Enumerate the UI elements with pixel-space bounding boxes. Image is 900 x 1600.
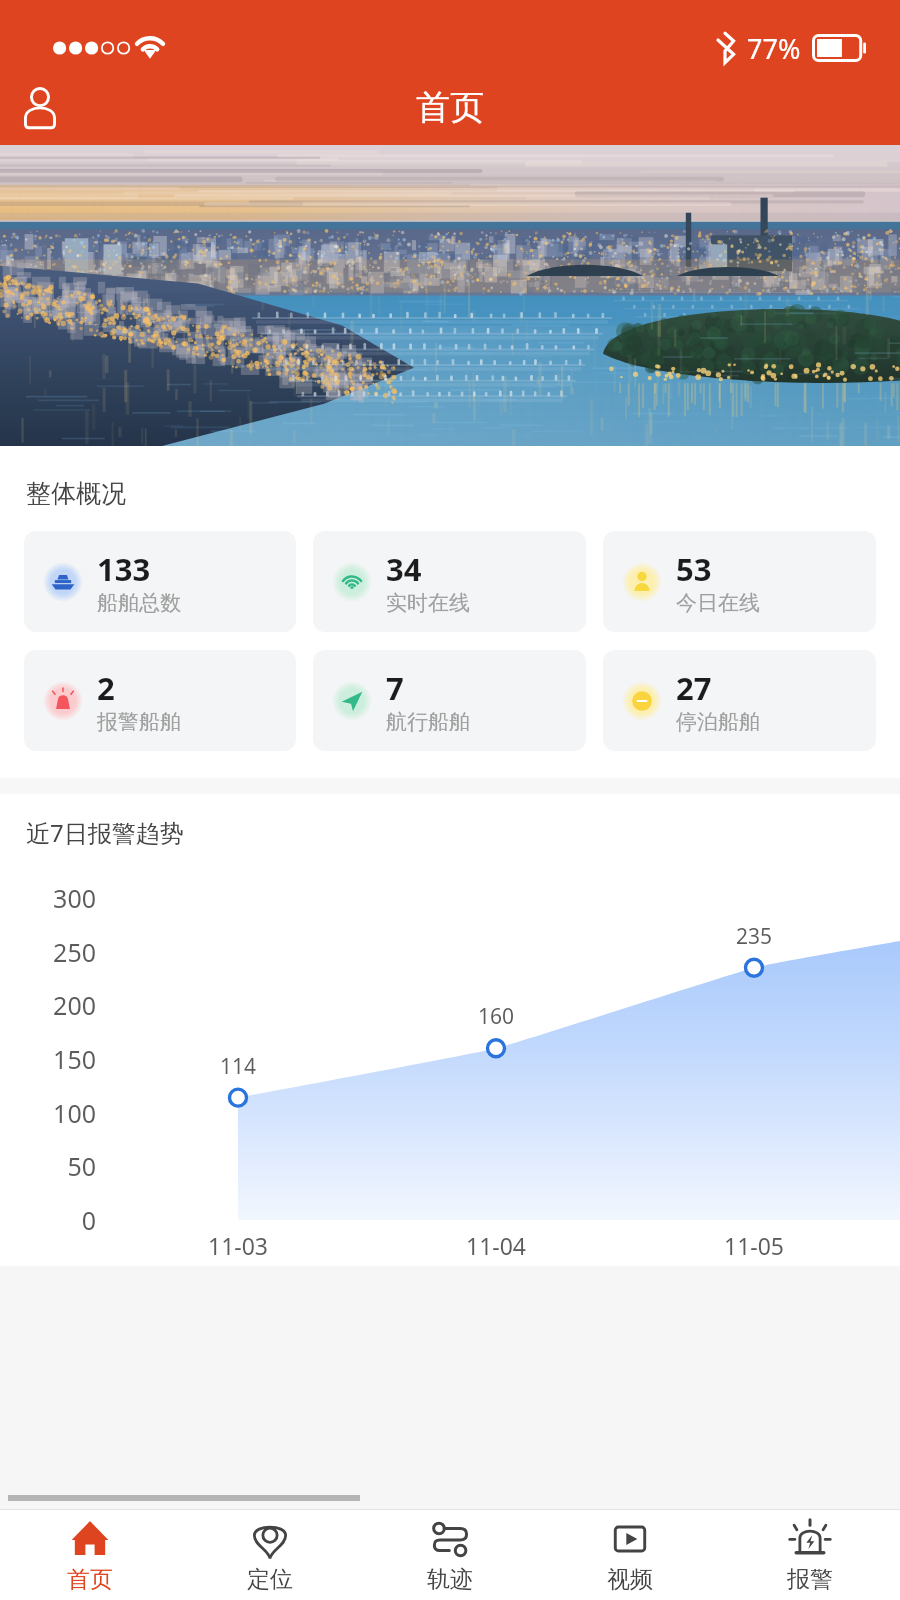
staticText: 近7日报警趋势 xyxy=(26,816,184,849)
staticText: 整体概况 xyxy=(26,478,126,509)
staticText: 160 xyxy=(478,1002,515,1031)
button[interactable]: 2 xyxy=(24,650,296,751)
staticText: 114 xyxy=(220,1052,257,1081)
button[interactable]: 报警 xyxy=(720,1510,900,1600)
staticText: 首页 xyxy=(67,1565,113,1594)
staticText: 11-03 xyxy=(208,1230,269,1261)
staticText: 航行船舶 xyxy=(386,709,470,735)
staticText: 27 xyxy=(676,667,712,709)
button[interactable]: 53 xyxy=(603,531,876,632)
staticText: 今日在线 xyxy=(676,590,760,616)
staticText: 7 xyxy=(386,667,404,709)
staticText: 首页 xyxy=(416,86,484,129)
button[interactable]: 7 xyxy=(313,650,586,751)
staticText: 34 xyxy=(386,548,422,590)
button[interactable]: 定位 xyxy=(180,1510,360,1600)
staticText: 100 xyxy=(53,1096,96,1130)
button[interactable]: 视频 xyxy=(540,1510,720,1600)
staticText: 报警 xyxy=(787,1565,833,1594)
staticText: 53 xyxy=(676,548,712,590)
button[interactable]: 27 xyxy=(603,650,876,751)
button[interactable]: 轨迹 xyxy=(360,1510,540,1600)
button[interactable]: Profile xyxy=(14,81,66,133)
staticText: 报警船舶 xyxy=(97,709,181,735)
staticText: 11-04 xyxy=(466,1230,527,1261)
staticText: 300 xyxy=(53,881,96,915)
staticText: 实时在线 xyxy=(386,590,470,616)
button[interactable]: 133 xyxy=(24,531,296,632)
staticText: 轨迹 xyxy=(427,1565,473,1594)
staticText: 11-05 xyxy=(724,1230,785,1261)
staticText: 定位 xyxy=(247,1565,293,1594)
staticText: 船舶总数 xyxy=(97,590,181,616)
staticText: 150 xyxy=(53,1042,96,1076)
staticText: 0 xyxy=(81,1203,96,1237)
staticText: 250 xyxy=(53,935,96,969)
button[interactable]: 34 xyxy=(313,531,586,632)
staticText: 50 xyxy=(67,1149,96,1183)
staticText: 133 xyxy=(97,548,151,590)
staticText: 2 xyxy=(97,667,115,709)
staticText: 200 xyxy=(53,988,96,1022)
button[interactable]: 首页 xyxy=(0,1510,180,1600)
staticText: 停泊船舶 xyxy=(676,709,760,735)
staticText: 视频 xyxy=(607,1565,653,1594)
staticText: 235 xyxy=(736,922,773,951)
staticText: 77% xyxy=(747,30,801,67)
